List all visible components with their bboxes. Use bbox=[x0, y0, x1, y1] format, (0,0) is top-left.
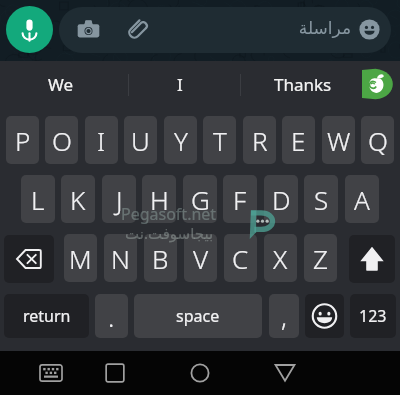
staticText: space bbox=[176, 305, 220, 327]
button[interactable]: R bbox=[243, 116, 276, 164]
staticText: H bbox=[150, 182, 169, 217]
button[interactable]: Record voice message bbox=[6, 6, 53, 53]
staticText: M bbox=[69, 241, 92, 276]
staticText: J bbox=[116, 182, 123, 217]
button[interactable]: F bbox=[223, 175, 257, 223]
staticText: Q bbox=[368, 123, 388, 158]
staticText: C bbox=[232, 241, 249, 276]
button[interactable]: I bbox=[85, 116, 118, 164]
button[interactable]: B bbox=[144, 234, 177, 282]
button[interactable]: L bbox=[21, 175, 55, 223]
staticText: بيجاسوفت.نت bbox=[125, 223, 214, 243]
button[interactable]: We bbox=[0, 62, 121, 107]
staticText: . bbox=[108, 299, 115, 334]
staticText: B bbox=[152, 241, 169, 276]
button[interactable]: Thanks bbox=[241, 62, 365, 107]
button[interactable]: V bbox=[184, 234, 217, 282]
button[interactable]: Emoji bbox=[359, 19, 380, 40]
button[interactable]: Recent apps bbox=[101, 359, 129, 387]
button[interactable]: K bbox=[61, 175, 95, 223]
button[interactable]: G bbox=[183, 175, 217, 223]
staticText: P bbox=[15, 123, 31, 158]
button[interactable]: return bbox=[4, 294, 89, 338]
button[interactable]: O bbox=[45, 116, 78, 164]
button[interactable]: Attach bbox=[126, 18, 149, 41]
staticText: D bbox=[272, 182, 291, 217]
button[interactable]: Camera bbox=[77, 18, 100, 41]
staticText: X bbox=[273, 241, 288, 276]
staticText: Y bbox=[174, 123, 188, 158]
staticText: G bbox=[191, 182, 210, 217]
button[interactable]: Emoji keyboard bbox=[305, 294, 344, 338]
button[interactable]: Home bbox=[186, 359, 214, 387]
button[interactable]: Y bbox=[164, 116, 197, 164]
staticText: N bbox=[111, 241, 130, 276]
button[interactable]: . bbox=[95, 294, 128, 338]
staticText: 123 bbox=[359, 305, 387, 327]
staticText: Z bbox=[313, 241, 328, 276]
staticText: We bbox=[48, 73, 74, 96]
staticText: Thanks bbox=[274, 73, 332, 96]
staticText: T bbox=[213, 123, 227, 158]
button[interactable]: I bbox=[129, 62, 230, 107]
staticText: L bbox=[31, 182, 45, 217]
button[interactable]: E bbox=[282, 116, 315, 164]
staticText: F bbox=[233, 182, 247, 217]
staticText: V bbox=[193, 241, 209, 276]
staticText: Pegasoft.net bbox=[121, 203, 217, 225]
staticText: R bbox=[252, 123, 268, 158]
staticText: U bbox=[131, 123, 150, 158]
button[interactable]: Shift bbox=[349, 235, 395, 283]
button[interactable]: M bbox=[64, 234, 97, 282]
button[interactable]: W bbox=[322, 116, 355, 164]
button[interactable]: Change keyboard bbox=[362, 68, 392, 100]
staticText: A bbox=[354, 182, 370, 217]
button[interactable]: A bbox=[345, 175, 379, 223]
button[interactable]: J bbox=[102, 175, 136, 223]
button[interactable]: S bbox=[304, 175, 338, 223]
button[interactable]: U bbox=[124, 116, 157, 164]
button[interactable]: X bbox=[264, 234, 297, 282]
staticText: return bbox=[23, 305, 71, 327]
staticText: W bbox=[327, 123, 351, 158]
button[interactable]: Back bbox=[271, 359, 299, 387]
button[interactable]: Q bbox=[361, 116, 394, 164]
staticText: O bbox=[52, 123, 72, 158]
button[interactable]: Backspace bbox=[4, 235, 54, 283]
button[interactable]: Hide keyboard bbox=[37, 359, 65, 387]
staticText: I bbox=[177, 73, 183, 96]
button[interactable]: P bbox=[6, 116, 39, 164]
button[interactable]: D bbox=[264, 175, 298, 223]
staticText: K bbox=[70, 182, 86, 217]
button[interactable]: T bbox=[203, 116, 236, 164]
button[interactable]: , bbox=[269, 294, 299, 338]
button[interactable]: مراسلة bbox=[281, 18, 351, 38]
staticText: , bbox=[281, 299, 287, 334]
button[interactable]: N bbox=[104, 234, 137, 282]
button[interactable]: H bbox=[142, 175, 176, 223]
staticText: S bbox=[314, 182, 329, 217]
staticText: I bbox=[97, 123, 106, 158]
button[interactable]: Z bbox=[304, 234, 337, 282]
button[interactable]: 123 bbox=[350, 294, 396, 338]
button[interactable]: space bbox=[134, 294, 262, 338]
button[interactable]: C bbox=[224, 234, 257, 282]
staticText: E bbox=[291, 123, 306, 158]
